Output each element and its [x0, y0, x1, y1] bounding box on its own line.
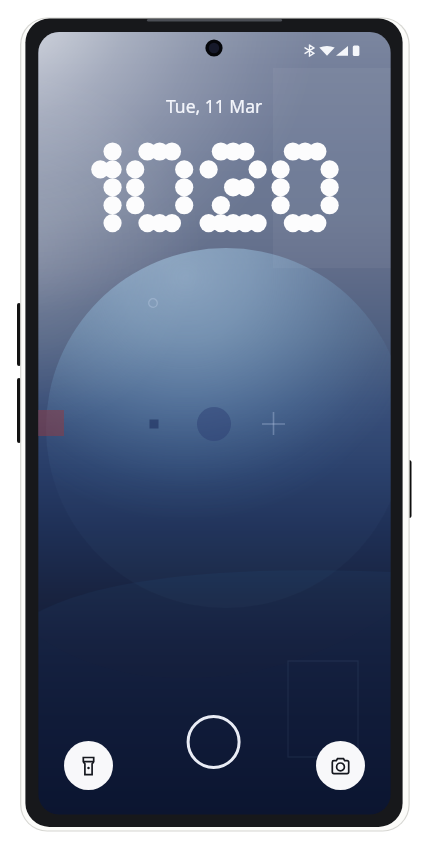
- button[interactable]: Fingerprint unlock: [186, 714, 242, 770]
- button[interactable]: Camera: [316, 741, 365, 790]
- staticText: Tue, 11 Mar: [166, 94, 263, 118]
- button[interactable]: Flashlight: [64, 741, 113, 790]
